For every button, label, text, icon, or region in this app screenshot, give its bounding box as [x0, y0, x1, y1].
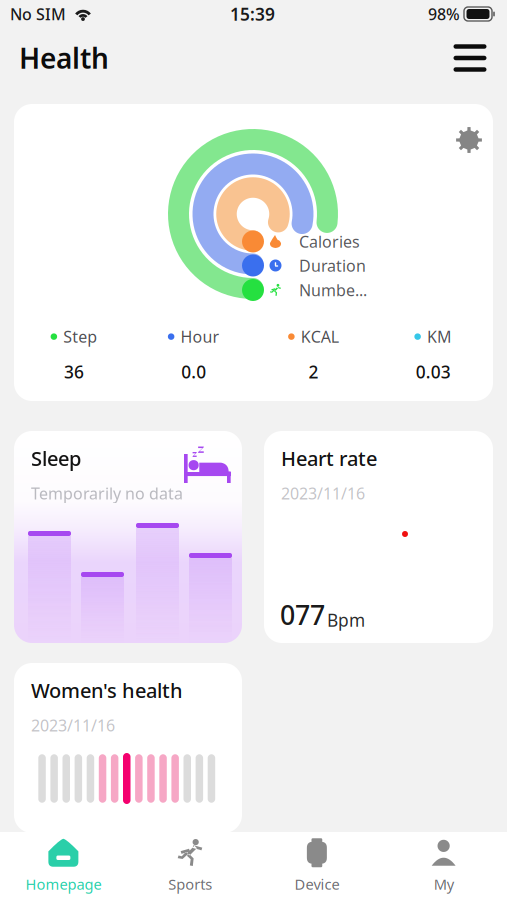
staticText: No SIM	[10, 3, 66, 25]
button[interactable]: Homepage	[0, 832, 127, 900]
button[interactable]: Menu	[446, 35, 494, 81]
staticText: Bpm	[327, 608, 365, 631]
staticText: Women's health	[31, 677, 183, 704]
button[interactable]: Sports	[127, 832, 254, 900]
staticText: My	[434, 874, 454, 894]
staticText: Homepage	[25, 874, 101, 894]
staticText: Hour	[180, 326, 219, 347]
button[interactable]: Device	[253, 832, 380, 900]
staticText: 98%	[428, 3, 460, 25]
staticText: 2	[308, 360, 318, 383]
staticText: 15:39	[230, 2, 275, 25]
staticText: 0.0	[181, 360, 206, 383]
staticText: Numbe...	[299, 279, 367, 301]
staticText: 0.03	[416, 360, 451, 383]
staticText: Health	[19, 39, 109, 77]
staticText: 2023/11/16	[281, 483, 365, 504]
staticText: Step	[63, 326, 97, 347]
button[interactable]: My	[380, 832, 507, 900]
staticText: Sports	[168, 874, 212, 894]
staticText: KCAL	[301, 326, 339, 347]
staticText: Calories	[299, 231, 360, 252]
staticText: KM	[427, 326, 452, 347]
staticText: Heart rate	[281, 445, 377, 472]
staticText: 2023/11/16	[31, 715, 115, 736]
button[interactable]: Settings	[446, 117, 492, 163]
staticText: 077	[280, 597, 325, 632]
staticText: Sleep	[31, 445, 81, 472]
staticText: 36	[64, 360, 84, 383]
staticText: Duration	[299, 255, 366, 276]
staticText: Temporarily no data	[31, 483, 183, 504]
staticText: Device	[294, 874, 339, 894]
